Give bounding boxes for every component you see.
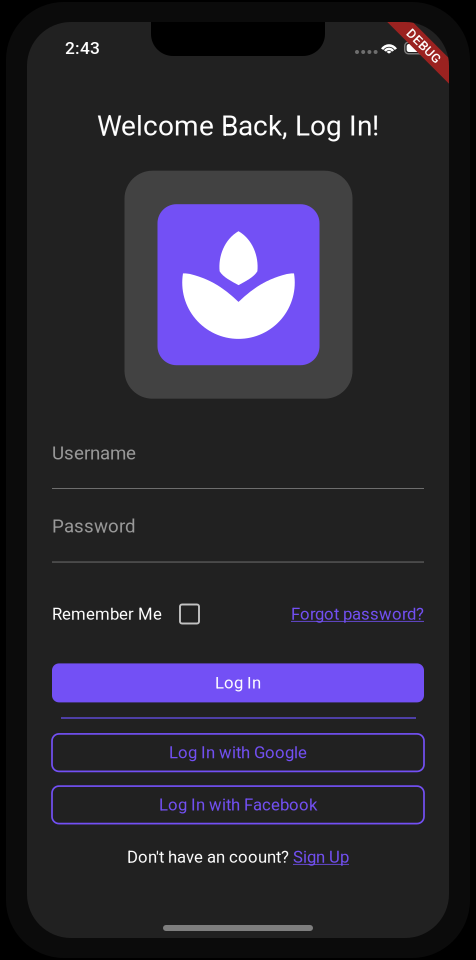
button[interactable]: Log In with Facebook: [52, 786, 424, 824]
staticText: Log In: [215, 673, 261, 693]
staticText: Forgot password?: [291, 604, 424, 624]
button[interactable]: Log In with Google: [52, 734, 424, 771]
staticText: Remember Me: [52, 604, 162, 624]
button[interactable]: Log In: [52, 663, 424, 702]
staticText: Log In with Facebook: [159, 795, 317, 815]
button[interactable]: Sign Up: [293, 847, 349, 867]
staticText: Username: [52, 442, 136, 464]
staticText: 2:43: [65, 38, 100, 58]
staticText: Don't have an coount?: [127, 847, 289, 867]
staticText: Sign Up: [293, 847, 349, 867]
button[interactable]: Forgot password?: [291, 604, 424, 624]
staticText: Password: [52, 515, 136, 537]
staticText: Welcome Back, Log In!: [97, 110, 379, 142]
staticText: DEBUG: [402, 38, 445, 54]
staticText: Log In with Google: [169, 743, 307, 762]
button[interactable]: Remember Me: [52, 604, 199, 624]
